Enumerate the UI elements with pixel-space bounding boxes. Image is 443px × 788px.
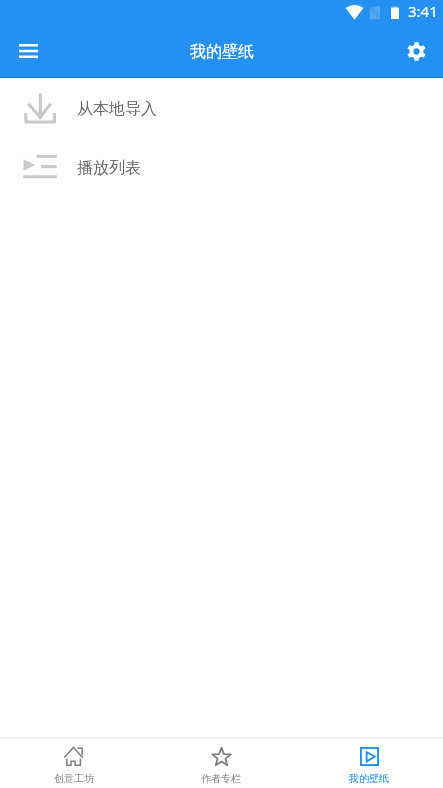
- staticText: 播放列表: [77, 158, 141, 178]
- staticText: 从本地导入: [77, 99, 157, 119]
- staticText: 作者专栏: [201, 772, 241, 785]
- button[interactable]: 创意工坊: [0, 744, 147, 788]
- staticText: 我的壁纸: [349, 772, 389, 785]
- staticText: 创意工坊: [54, 772, 94, 785]
- staticText: 我的壁纸: [190, 42, 254, 62]
- button[interactable]: Settings: [398, 33, 434, 69]
- button[interactable]: Menu: [10, 33, 46, 69]
- button[interactable]: 从本地导入: [0, 78, 443, 137]
- button[interactable]: 作者专栏: [147, 744, 295, 788]
- button[interactable]: 播放列表: [0, 137, 443, 196]
- button[interactable]: 我的壁纸: [295, 744, 443, 788]
- staticText: 3:41: [408, 1, 438, 21]
